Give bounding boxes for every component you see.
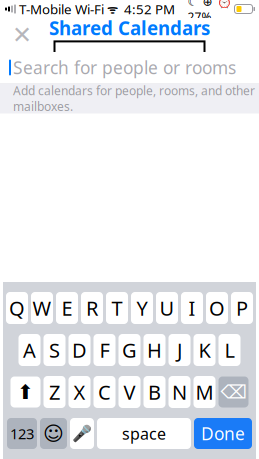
staticText: ᯤ bbox=[104, 1, 118, 17]
button[interactable]: P bbox=[231, 292, 253, 324]
button[interactable]: K bbox=[193, 334, 215, 366]
staticText: T bbox=[111, 295, 122, 321]
staticText: P bbox=[236, 295, 248, 321]
staticText: Y bbox=[136, 295, 147, 321]
staticText: ✕ bbox=[12, 21, 32, 49]
staticText: X bbox=[73, 379, 85, 405]
staticText: N bbox=[172, 379, 187, 405]
button[interactable]: Numbers bbox=[7, 418, 37, 449]
button[interactable]: Delete bbox=[218, 376, 248, 407]
button[interactable]: V bbox=[118, 376, 140, 408]
staticText: Search for people or rooms bbox=[13, 56, 236, 79]
staticText: I bbox=[188, 295, 195, 321]
button[interactable]: J bbox=[168, 334, 190, 366]
staticText: L bbox=[224, 337, 234, 363]
staticText: F bbox=[99, 337, 109, 363]
staticText: R bbox=[86, 295, 98, 321]
staticText: A bbox=[23, 337, 36, 363]
staticText: Z bbox=[49, 379, 60, 405]
staticText: 123 bbox=[10, 424, 34, 443]
staticText: 4:52 PM bbox=[118, 0, 175, 18]
button[interactable]: Close bbox=[5, 19, 39, 51]
button[interactable]: Z bbox=[43, 376, 65, 408]
button[interactable]: Space bbox=[97, 418, 191, 449]
staticText: S bbox=[49, 337, 60, 363]
staticText: ☺ bbox=[43, 422, 64, 445]
staticText: Q bbox=[9, 295, 25, 321]
staticText: O bbox=[209, 295, 225, 321]
staticText: D bbox=[72, 337, 87, 363]
button[interactable]: Y bbox=[131, 292, 153, 324]
staticText: H bbox=[147, 337, 162, 363]
staticText: ⬆ bbox=[17, 381, 34, 403]
staticText: K bbox=[198, 337, 210, 363]
staticText: Add calendars for people, rooms, and oth… bbox=[13, 83, 255, 114]
button[interactable]: E bbox=[56, 292, 78, 324]
button[interactable]: Search for people or rooms bbox=[0, 52, 259, 83]
staticText: V bbox=[123, 379, 135, 405]
button[interactable]: O bbox=[206, 292, 228, 324]
button[interactable]: N bbox=[168, 376, 190, 408]
button[interactable]: B bbox=[143, 376, 165, 408]
button[interactable]: Emoji bbox=[40, 418, 67, 449]
button[interactable]: U bbox=[156, 292, 178, 324]
button[interactable]: X bbox=[68, 376, 90, 408]
button[interactable]: S bbox=[43, 334, 65, 366]
staticText: Done bbox=[201, 422, 245, 445]
button[interactable]: A bbox=[18, 334, 40, 366]
button[interactable]: Q bbox=[6, 292, 28, 324]
staticText: T-Mobile Wi-Fi bbox=[16, 0, 104, 18]
staticText: G bbox=[122, 337, 137, 363]
button[interactable]: L bbox=[218, 334, 240, 366]
staticText: Shared Calendars bbox=[49, 16, 210, 40]
button[interactable]: Dictate bbox=[70, 418, 94, 449]
staticText: U bbox=[159, 295, 174, 321]
staticText: M bbox=[195, 379, 213, 405]
staticText: W bbox=[32, 295, 51, 321]
staticText: J bbox=[177, 337, 182, 363]
staticText: C bbox=[98, 379, 111, 405]
staticText: E bbox=[61, 295, 72, 321]
staticText: 🎤 bbox=[72, 424, 92, 443]
staticText: ☾ ⊕ ⏰ 27% bbox=[187, 0, 231, 25]
button[interactable]: W bbox=[31, 292, 53, 324]
staticText: B bbox=[148, 379, 161, 405]
button[interactable]: Shift bbox=[10, 376, 40, 407]
button[interactable]: G bbox=[118, 334, 140, 366]
button[interactable]: R bbox=[81, 292, 103, 324]
button[interactable]: H bbox=[143, 334, 165, 366]
button[interactable]: I bbox=[181, 292, 203, 324]
staticText: ⌫ bbox=[220, 381, 246, 403]
button[interactable]: T bbox=[106, 292, 128, 324]
button[interactable]: D bbox=[68, 334, 90, 366]
button[interactable]: C bbox=[93, 376, 115, 408]
button[interactable]: M bbox=[193, 376, 215, 408]
button[interactable]: F bbox=[93, 334, 115, 366]
staticText: space bbox=[122, 423, 166, 444]
button[interactable]: Done bbox=[194, 418, 252, 449]
